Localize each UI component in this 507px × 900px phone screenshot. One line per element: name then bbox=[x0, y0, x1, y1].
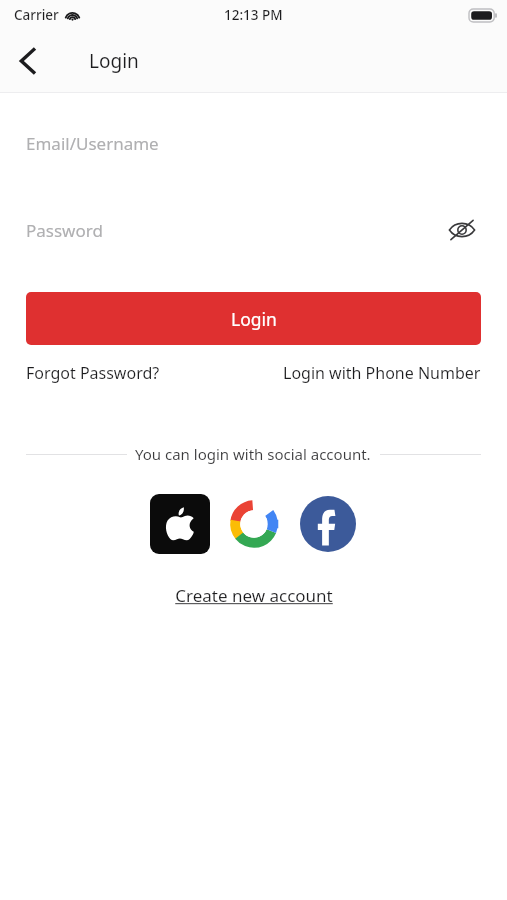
button[interactable]: Show password bbox=[443, 211, 481, 249]
button[interactable]: Sign in with Facebook bbox=[298, 494, 358, 554]
staticText: Login with Phone Number bbox=[283, 362, 481, 384]
staticText: Password bbox=[26, 219, 103, 242]
button[interactable]: Login with Phone Number bbox=[283, 362, 481, 384]
staticText: You can login with social account. bbox=[135, 444, 371, 464]
button[interactable]: Forgot Password? bbox=[26, 362, 160, 384]
staticText: Carrier bbox=[14, 6, 59, 24]
staticText: Login bbox=[89, 48, 139, 74]
staticText: 12:13 PM bbox=[224, 6, 283, 24]
button[interactable]: Back bbox=[0, 33, 56, 89]
button[interactable]: Password bbox=[0, 210, 507, 250]
button[interactable]: Login bbox=[26, 292, 481, 345]
staticText: Login bbox=[231, 307, 277, 331]
staticText: Forgot Password? bbox=[26, 362, 160, 384]
button[interactable]: Create new account bbox=[175, 584, 333, 607]
button[interactable]: Email/Username bbox=[0, 123, 507, 163]
button[interactable]: Sign in with Google bbox=[224, 494, 284, 554]
staticText: Email/Username bbox=[26, 132, 159, 155]
button[interactable]: Sign in with Apple bbox=[150, 494, 210, 554]
staticText: Create new account bbox=[175, 584, 333, 607]
